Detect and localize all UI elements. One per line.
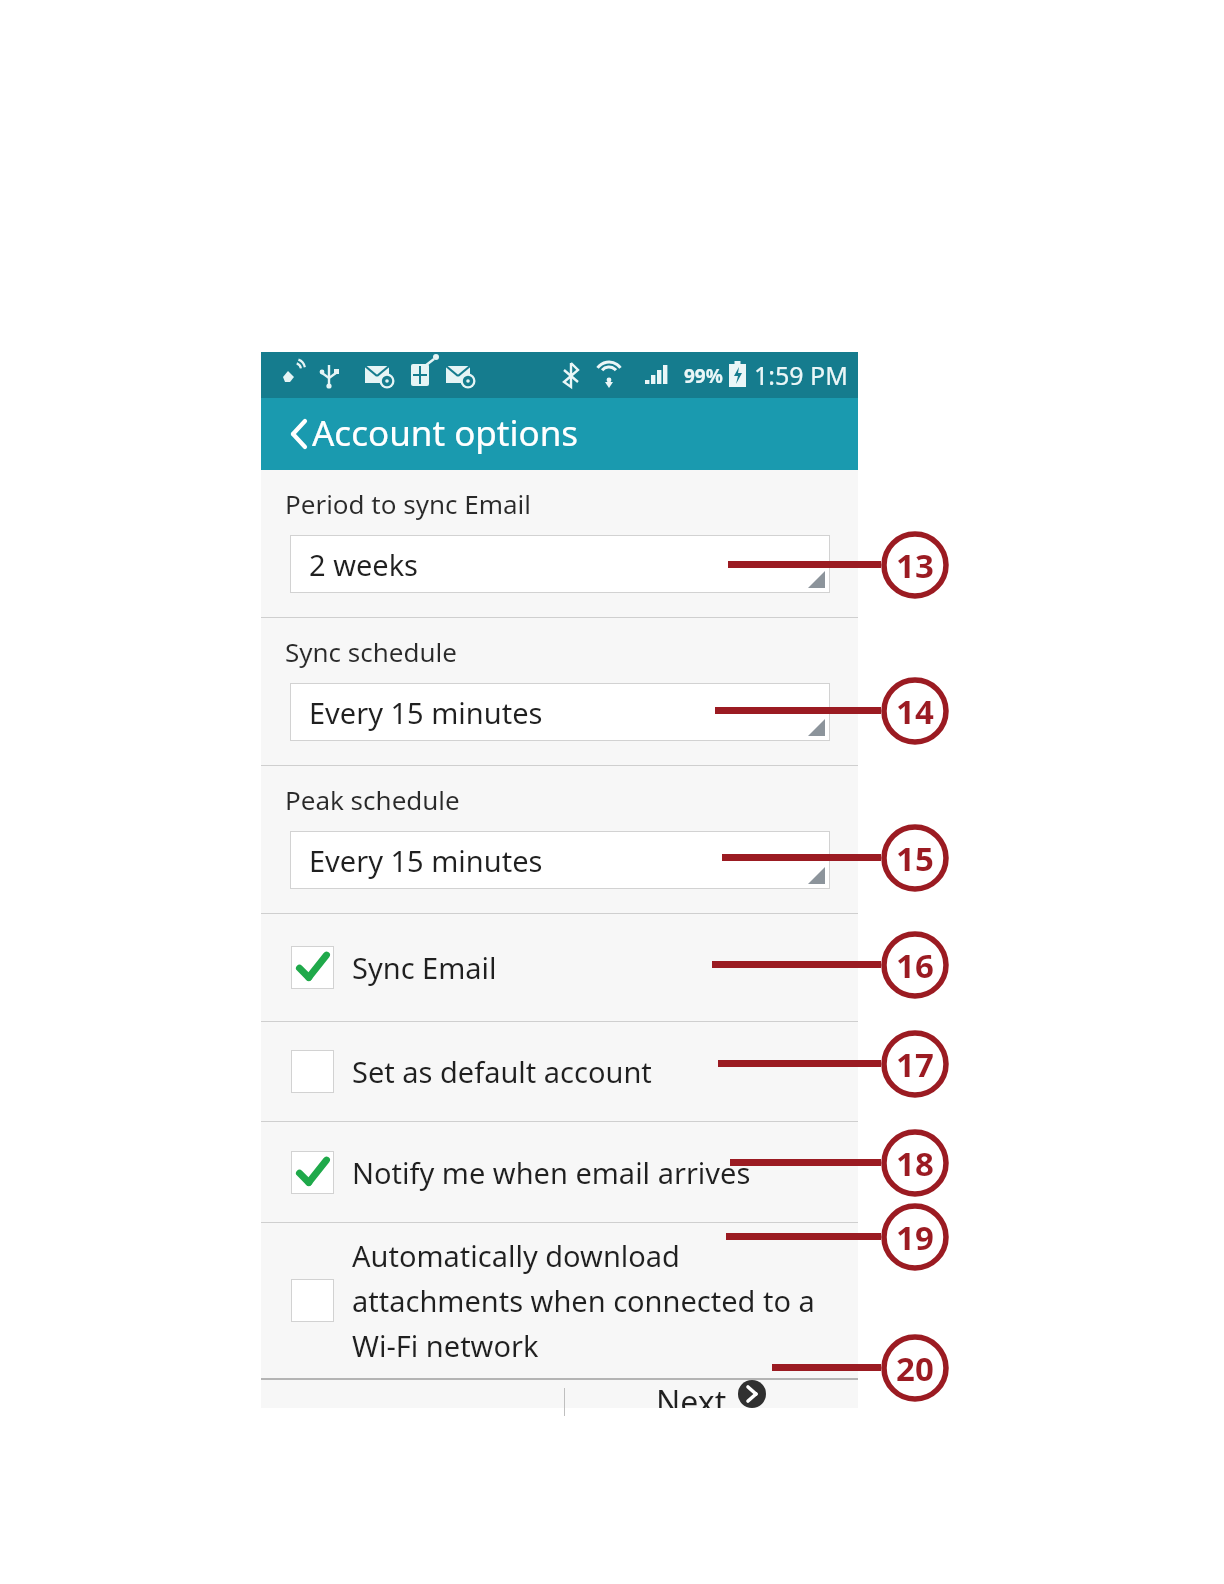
staticText: Next [656, 1380, 727, 1408]
staticText: 13 [896, 543, 934, 588]
staticText: attachments when connected to a [352, 1281, 815, 1320]
staticText: 15 [896, 836, 934, 881]
staticText: 20 [896, 1346, 934, 1391]
staticText: Automatically download [352, 1236, 680, 1275]
button[interactable]: Sync Email [261, 914, 858, 1021]
staticText: Peak schedule [285, 782, 460, 817]
staticText: Every 15 minutes [309, 841, 543, 880]
staticText: Notify me when email arrives [352, 1153, 751, 1192]
staticText: 2 weeks [309, 545, 419, 584]
staticText: Sync schedule [285, 634, 457, 669]
button[interactable]: Next [656, 1380, 775, 1408]
staticText: 16 [896, 943, 934, 988]
button[interactable]: Peak schedule [261, 766, 858, 913]
button[interactable]: Automatically download [261, 1223, 858, 1378]
button[interactable]: Sync schedule [261, 618, 858, 765]
staticText: Sync Email [352, 948, 497, 987]
staticText: Wi-Fi network [352, 1326, 539, 1365]
button[interactable]: Notify me when email arrives [261, 1122, 858, 1222]
staticText: 14 [896, 689, 934, 734]
button[interactable]: Set as default account [261, 1022, 858, 1121]
staticText: 1:59 PM [754, 358, 848, 392]
button[interactable]: Back [275, 413, 317, 455]
staticText: Account options [312, 409, 579, 457]
staticText: Set as default account [352, 1052, 652, 1091]
staticText: 19 [896, 1215, 934, 1260]
button[interactable]: Period to sync Email [261, 470, 858, 617]
staticText: Every 15 minutes [309, 693, 543, 732]
staticText: 99% [684, 363, 723, 389]
staticText: Period to sync Email [285, 486, 531, 521]
staticText: 17 [896, 1042, 934, 1087]
staticText: 18 [896, 1141, 934, 1186]
